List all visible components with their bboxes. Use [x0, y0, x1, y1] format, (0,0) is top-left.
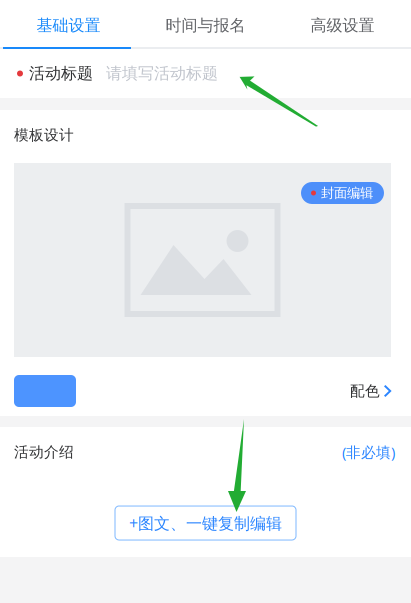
- staticText: 配色: [350, 382, 380, 400]
- button[interactable]: 封面编辑: [301, 182, 384, 204]
- button[interactable]: 高级设置: [274, 0, 411, 47]
- staticText: +图文、一键复制编辑: [129, 512, 282, 534]
- button[interactable]: 活动标题: [0, 49, 411, 98]
- staticText: (非必填): [342, 442, 395, 462]
- staticText: 模板设计: [14, 126, 74, 144]
- button[interactable]: 配色: [350, 375, 392, 407]
- staticText: 封面编辑: [321, 185, 373, 201]
- staticText: 高级设置: [310, 16, 374, 35]
- staticText: 时间与报名: [165, 16, 245, 35]
- button[interactable]: 基础设置: [0, 0, 137, 47]
- button[interactable]: +图文、一键复制编辑: [115, 506, 296, 540]
- button[interactable]: 主题色: [14, 375, 76, 407]
- staticText: 活动标题: [29, 64, 93, 83]
- staticText: 基础设置: [36, 16, 100, 35]
- staticText: 活动介绍: [14, 443, 74, 461]
- button[interactable]: 时间与报名: [137, 0, 274, 47]
- staticText: 请填写活动标题: [106, 64, 218, 83]
